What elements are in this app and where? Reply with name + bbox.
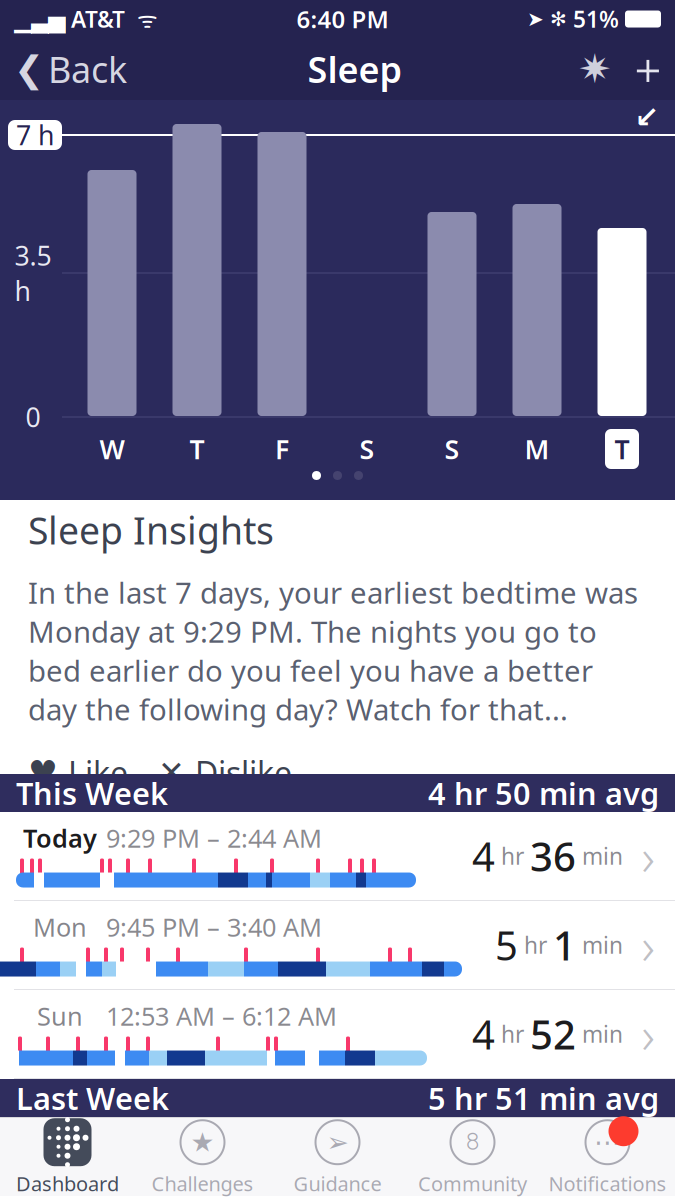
staticText: Today [23,821,97,855]
staticText: ↙ [634,100,659,134]
staticText: 0 [25,399,40,435]
staticText: ★ [190,1127,214,1157]
staticText: min [576,841,623,871]
button[interactable]: ★ [135,1118,270,1196]
staticText: M [524,431,549,467]
staticText: ▁▃▅ AT&T ᯤ [14,4,158,34]
staticText: min [576,930,623,960]
staticText: Last Week [16,1078,169,1118]
button[interactable]: Add sleep log [621,38,675,100]
staticText: Like [68,751,128,794]
staticText: Dislike [195,751,292,794]
staticText: S [359,431,374,467]
staticText: 3.5 h [14,238,51,308]
staticText: Guidance [293,1170,381,1197]
staticText: › [641,822,654,890]
button[interactable]: Mon [0,901,675,990]
staticText: Challenges [151,1170,253,1197]
staticText: Community [418,1170,527,1197]
staticText: ❮ [14,49,44,89]
button[interactable]: Settings [569,38,621,100]
staticText: hr [495,1019,530,1049]
staticText: › [641,1000,654,1068]
staticText: 9:45 PM – 3:40 AM [106,910,322,944]
staticText: ✷ [578,46,612,92]
staticText: 36 [530,829,576,882]
button[interactable]: Sun [0,990,675,1079]
staticText: Mon [33,910,87,944]
button[interactable]: ♥ [28,751,128,795]
button[interactable]: ৪ [405,1118,540,1196]
staticText: Back [48,45,127,93]
button[interactable]: ✕ [158,751,292,795]
staticText: 4 [472,829,495,882]
staticText: ＋ [626,43,669,95]
staticText: ⋯ [594,1127,621,1157]
staticText: 12:53 AM – 6:12 AM [106,999,337,1033]
staticText: hr [518,930,553,960]
staticText: 1 [553,918,576,971]
button[interactable]: Today [0,812,675,901]
staticText: T [614,431,629,467]
staticText: 51% [573,4,619,34]
staticText: F [275,431,289,467]
staticText: W [99,431,124,467]
staticText: ➤ [527,8,544,30]
staticText: T [189,431,204,467]
staticText: Sleep Insights [28,505,274,555]
button[interactable]: ⋯ [540,1118,675,1196]
staticText: ♥ [28,754,58,792]
staticText: › [641,911,654,979]
staticText: Sun [37,999,83,1033]
button[interactable]: ➢ [270,1118,405,1196]
button[interactable]: Collapse chart [627,102,667,132]
staticText: S [444,431,459,467]
staticText: hr [495,841,530,871]
staticText: 4 hr 50 min avg [428,773,659,813]
staticText: 5 [495,918,518,971]
staticText: Dashboard [16,1170,119,1197]
staticText: 9:29 PM – 2:44 AM [106,821,322,855]
staticText: Sleep [307,45,402,93]
staticText: 7 h [16,117,54,153]
staticText: 4 [472,1007,495,1060]
staticText: 6:40 PM [296,3,388,35]
staticText: 52 [530,1007,576,1060]
staticText: min [576,1019,623,1049]
staticText: This Week [16,773,168,813]
button[interactable]: Dashboard [0,1118,135,1196]
button[interactable]: ❮ [0,38,141,100]
staticText: ✻ [550,8,567,30]
staticText: ➢ [326,1127,348,1157]
staticText: In the last 7 days, your earliest bedtim… [28,573,638,729]
staticText: 5 hr 51 min avg [428,1078,659,1118]
staticText: Notifications [548,1170,666,1197]
staticText: ৪ [464,1124,481,1161]
staticText: ✕ [158,754,185,791]
